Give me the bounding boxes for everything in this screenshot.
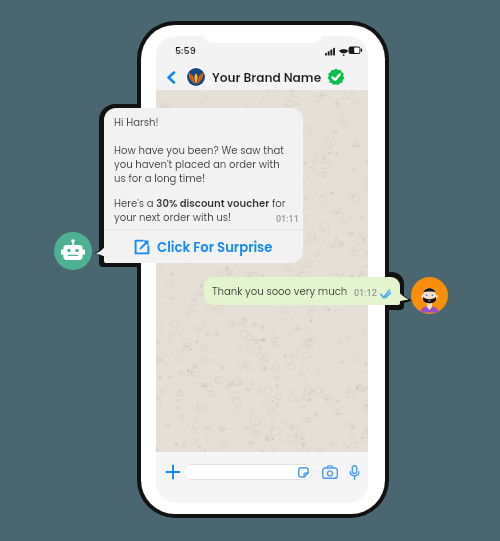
button[interactable]: Attach <box>163 462 183 482</box>
staticText: 01:11 <box>276 214 299 225</box>
button[interactable]: Camera <box>320 462 340 482</box>
staticText: Click For Surprise <box>157 238 273 256</box>
button[interactable] <box>183 464 313 480</box>
staticText: Hi Harsh! <box>114 116 159 130</box>
staticText: 01:12 <box>354 288 377 299</box>
button[interactable]: User avatar <box>411 277 448 314</box>
button[interactable]: Voice message <box>344 462 364 482</box>
button[interactable]: Back <box>161 65 181 89</box>
button[interactable]: Bot avatar <box>54 232 92 270</box>
staticText: Thank you sooo very much <box>212 285 348 299</box>
staticText: Your Brand Name <box>212 69 322 86</box>
staticText: 5:59 <box>175 44 196 57</box>
staticText: Here's a 30% discount voucher for your n… <box>114 197 286 225</box>
staticText: How have you been? We saw that you haven… <box>114 144 284 186</box>
button[interactable]: Click For Surprise <box>104 230 303 263</box>
